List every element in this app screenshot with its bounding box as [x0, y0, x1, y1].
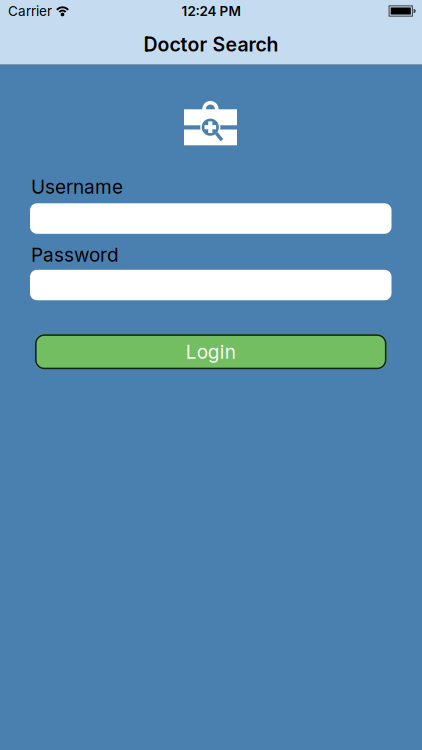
staticText: Password	[31, 243, 119, 266]
staticText: Doctor Search	[143, 33, 278, 56]
button[interactable]: Password	[0, 270, 422, 300]
button[interactable]: Login	[0, 334, 422, 369]
staticText: Carrier	[8, 3, 52, 19]
button[interactable]: Username	[0, 203, 422, 234]
staticText: Username	[31, 175, 123, 198]
staticText: 12:24 PM	[181, 3, 240, 19]
staticText: Login	[186, 340, 236, 363]
